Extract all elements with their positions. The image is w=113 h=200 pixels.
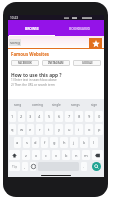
- button[interactable]: r: [36, 124, 43, 135]
- button[interactable]: ,: [22, 162, 28, 171]
- button[interactable]: ?1☺: [9, 162, 20, 171]
- button[interactable]: FACEBOOK: [11, 60, 39, 66]
- button[interactable]: m: [82, 150, 90, 160]
- button[interactable]: x: [32, 150, 40, 160]
- staticText: ,: [24, 164, 26, 169]
- staticText: d: [34, 140, 37, 145]
- staticText: b: [65, 153, 68, 158]
- button[interactable]: 6: [55, 111, 63, 122]
- staticText: 1) Enter text in search box above: [11, 78, 57, 82]
- staticText: h: [63, 140, 66, 145]
- button[interactable]: e: [27, 124, 34, 135]
- button[interactable]: sign: [85, 99, 104, 110]
- button[interactable]: Emoji: [30, 162, 36, 171]
- button[interactable]: 2: [18, 111, 25, 122]
- staticText: x: [35, 153, 38, 158]
- staticText: songs: [71, 103, 80, 107]
- button[interactable]: 3: [27, 111, 34, 122]
- staticText: n: [75, 153, 78, 158]
- button[interactable]: d: [32, 137, 39, 148]
- button[interactable]: k: [80, 137, 88, 148]
- staticText: song: [10, 40, 20, 46]
- button[interactable]: Favorites: [89, 38, 102, 49]
- staticText: v: [55, 153, 58, 158]
- staticText: GOOGLE: [82, 61, 93, 65]
- button[interactable]: o: [85, 124, 93, 135]
- button[interactable]: l: [90, 137, 98, 148]
- staticText: 8: [78, 114, 81, 119]
- staticText: sign: [91, 103, 98, 107]
- staticText: z: [25, 153, 27, 158]
- button[interactable]: s: [23, 137, 30, 148]
- button[interactable]: t: [45, 124, 53, 135]
- staticText: 2) Then the URL or search term: [11, 83, 55, 87]
- button[interactable]: song: [8, 99, 28, 110]
- staticText: y: [58, 127, 61, 132]
- button[interactable]: 8: [75, 111, 83, 122]
- button[interactable]: single: [47, 99, 66, 110]
- button[interactable]: a: [14, 137, 21, 148]
- staticText: u: [68, 127, 71, 132]
- button[interactable]: i: [75, 124, 83, 135]
- button[interactable]: q: [9, 124, 16, 135]
- button[interactable]: songs: [66, 99, 85, 110]
- staticText: 6: [58, 114, 61, 119]
- staticText: m: [84, 153, 88, 158]
- button[interactable]: 0: [95, 111, 103, 122]
- button[interactable]: Search: [92, 162, 101, 171]
- button[interactable]: 5: [45, 111, 53, 122]
- staticText: p: [98, 127, 101, 132]
- staticText: e: [29, 127, 32, 132]
- button[interactable]: w: [18, 124, 25, 135]
- staticText: a: [16, 140, 19, 145]
- button[interactable]: u: [65, 124, 73, 135]
- button[interactable]: 1: [9, 111, 16, 122]
- button[interactable]: p: [95, 124, 103, 135]
- staticText: 1: [11, 114, 14, 119]
- button[interactable]: 4: [36, 111, 43, 122]
- button[interactable]: n: [72, 150, 80, 160]
- staticText: j: [73, 140, 75, 145]
- staticText: 3: [29, 114, 32, 119]
- staticText: INSTAGRAM: [48, 61, 64, 65]
- button[interactable]: Backspace: [92, 150, 103, 160]
- staticText: k: [83, 140, 86, 145]
- staticText: 4: [38, 114, 41, 119]
- staticText: c: [45, 153, 47, 158]
- staticText: q: [11, 127, 14, 132]
- button[interactable]: f: [41, 137, 48, 148]
- staticText: 5: [48, 114, 51, 119]
- button[interactable]: j: [70, 137, 78, 148]
- button[interactable]: c: [42, 150, 50, 160]
- button[interactable]: y: [55, 124, 63, 135]
- button[interactable]: h: [60, 137, 68, 148]
- button[interactable]: 7: [65, 111, 73, 122]
- staticText: f: [44, 140, 46, 145]
- staticText: .: [83, 164, 85, 169]
- staticText: i: [78, 127, 80, 132]
- staticText: 9: [88, 114, 91, 119]
- button[interactable]: 9: [85, 111, 93, 122]
- staticText: s: [26, 140, 28, 145]
- button[interactable]: GOOGLE: [73, 60, 101, 66]
- button[interactable]: g: [50, 137, 58, 148]
- staticText: w: [20, 127, 24, 132]
- button[interactable]: BOOKMARKS: [56, 20, 104, 36]
- button[interactable]: .: [81, 162, 87, 171]
- button[interactable]: b: [62, 150, 70, 160]
- button[interactable]: v: [52, 150, 60, 160]
- button[interactable]: BROWSE: [8, 20, 56, 36]
- button[interactable]: INSTAGRAM: [42, 60, 70, 66]
- button[interactable]: z: [22, 150, 30, 160]
- staticText: single: [52, 103, 61, 107]
- button[interactable]: Shift: [9, 150, 20, 160]
- staticText: 7: [68, 114, 71, 119]
- staticText: song: [14, 103, 22, 107]
- staticText: Famous Websites: [11, 51, 50, 57]
- staticText: BROWSE: [25, 26, 39, 30]
- staticText: How to use this app ?: [11, 72, 62, 79]
- button[interactable]: coming: [28, 99, 47, 110]
- staticText: BOOKMARKS: [69, 26, 91, 30]
- staticText: 2: [20, 114, 23, 119]
